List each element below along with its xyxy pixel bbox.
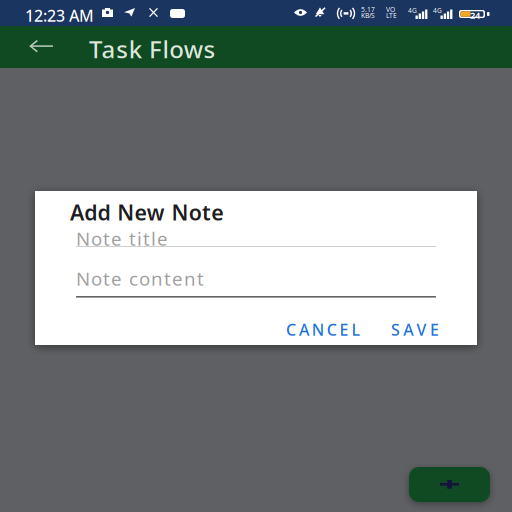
staticText: Add New Note [70,198,230,226]
button[interactable]: Back [16,25,66,67]
button[interactable]: CANCEL [274,309,379,350]
staticText: 4G [433,6,444,15]
staticText: CANCEL [286,319,367,340]
staticText: KB/S [361,11,377,20]
button[interactable]: Add note [409,467,490,502]
staticText: VO [386,5,397,14]
staticText: SAVE [391,319,446,340]
staticText: LTE [386,11,399,20]
button[interactable]: SAVE [379,309,458,350]
staticText: 5.17 [361,5,377,14]
staticText: Note content [76,266,210,291]
staticText: Note title [76,226,174,251]
staticText: 4G [408,6,419,15]
staticText: 24 [470,9,480,21]
staticText: 12:23 AM [25,5,98,26]
staticText: Task Flows [89,33,222,65]
